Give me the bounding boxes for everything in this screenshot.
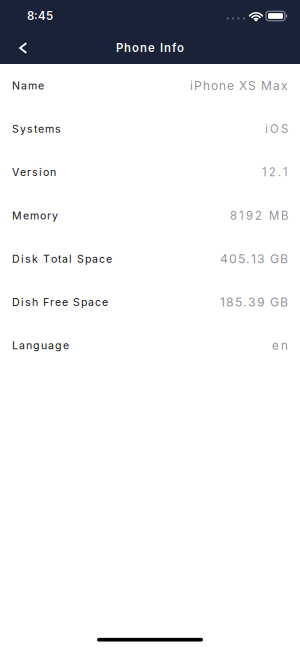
staticText: i P h o n e X S M a x xyxy=(190,78,288,93)
staticText: 8:45 xyxy=(27,9,53,23)
staticText: 1 2 . 1 xyxy=(262,166,288,179)
staticText: D i s h F r e e S p a c e xyxy=(12,296,108,308)
staticText: N a m e xyxy=(12,79,44,92)
staticText: i O S xyxy=(265,122,288,136)
staticText: M e m o r y xyxy=(12,209,58,222)
staticText: 4 0 5 . 1 3 G B xyxy=(220,251,288,266)
staticText: 1 8 5 . 3 9 G B xyxy=(220,295,288,309)
staticText: L a n g u a g e xyxy=(12,339,69,352)
button[interactable]: Back xyxy=(0,32,41,64)
staticText: V e r s i o n xyxy=(12,166,56,179)
staticText: e n xyxy=(272,338,288,352)
staticText: P h o n e I n f o xyxy=(116,41,184,55)
staticText: D i s k T o t a l S p a c e xyxy=(12,252,112,265)
staticText: S y s t e m s xyxy=(12,122,61,135)
staticText: 8 1 9 2 M B xyxy=(230,209,288,222)
